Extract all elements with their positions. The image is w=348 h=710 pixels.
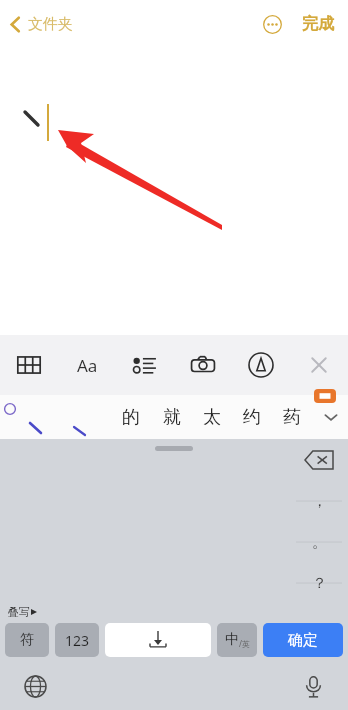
staticText: 药	[283, 406, 301, 429]
button[interactable]: Camera	[174, 335, 232, 395]
staticText: 就	[163, 406, 181, 429]
button[interactable]: 完成	[298, 8, 338, 40]
button[interactable]: Voice input	[298, 671, 328, 701]
button[interactable]: More options	[258, 10, 286, 38]
staticText: 约	[243, 406, 261, 429]
button[interactable]: Expand candidates	[314, 400, 348, 434]
staticText: 完成	[302, 14, 334, 34]
button[interactable]: 符	[5, 623, 49, 657]
button[interactable]: ？	[290, 563, 348, 604]
staticText: 中	[225, 631, 239, 649]
button[interactable]: Close	[290, 335, 348, 395]
staticText: 的	[122, 406, 140, 429]
staticText: ？	[312, 574, 327, 593]
button[interactable]: 太	[192, 395, 232, 439]
staticText: 。	[312, 533, 327, 552]
button[interactable]: Table	[0, 335, 58, 395]
staticText: ，	[312, 492, 327, 511]
button[interactable]: 约	[232, 395, 272, 439]
staticText: 叠写	[8, 605, 30, 619]
staticText: 太	[203, 406, 221, 429]
button[interactable]: Text format	[58, 335, 116, 395]
button[interactable]: 药	[272, 395, 312, 439]
button[interactable]: Space	[105, 623, 211, 657]
button[interactable]: 。	[290, 522, 348, 563]
button[interactable]: 就	[151, 395, 192, 439]
button[interactable]: Backspace	[290, 439, 348, 481]
button[interactable]: ，	[290, 481, 348, 522]
button[interactable]: 确定	[263, 623, 343, 657]
button[interactable]: 中	[217, 623, 257, 657]
staticText: /英	[239, 638, 250, 649]
button[interactable]: 的	[110, 395, 151, 439]
button[interactable]: Markup	[232, 335, 290, 395]
button[interactable]: Change language	[20, 671, 50, 701]
staticText: Aa	[77, 354, 98, 377]
staticText: 符	[20, 631, 34, 649]
button[interactable]: 文件夹	[6, 9, 77, 40]
staticText: 123	[65, 631, 90, 650]
button[interactable]: 123	[55, 623, 99, 657]
staticText: 文件夹	[28, 15, 73, 34]
staticText: 确定	[288, 631, 318, 650]
button[interactable]: Checklist	[116, 335, 174, 395]
